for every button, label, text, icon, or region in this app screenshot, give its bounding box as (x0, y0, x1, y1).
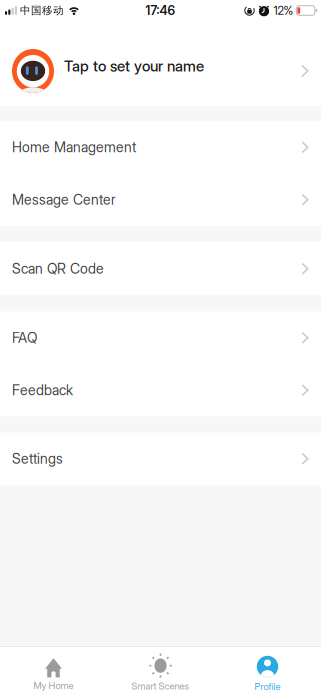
staticText: FAQ (12, 329, 37, 346)
staticText: Message Center (12, 191, 116, 208)
button[interactable]: Profile (214, 647, 321, 696)
staticText: Smart Scenes (131, 680, 189, 692)
button[interactable]: Tap to set your name (0, 21, 321, 106)
button[interactable]: Scan QR Code (0, 242, 321, 295)
staticText: My Home (33, 680, 73, 691)
staticText: 12% (273, 3, 293, 17)
button[interactable]: Settings (0, 432, 321, 485)
button[interactable]: Smart Scenes (107, 647, 214, 696)
button[interactable]: FAQ (0, 311, 321, 364)
button[interactable]: My Home (0, 647, 107, 696)
staticText: Profile (254, 681, 280, 692)
staticText: Home Management (12, 139, 136, 156)
staticText: 17:46 (145, 3, 175, 18)
staticText: Tap to set your name (64, 57, 204, 75)
staticText: Feedback (12, 382, 73, 399)
button[interactable]: Message Center (0, 173, 321, 226)
button[interactable]: Feedback (0, 364, 321, 416)
staticText: Scan QR Code (12, 260, 104, 277)
staticText: Settings (12, 450, 63, 467)
button[interactable]: Home Management (0, 121, 321, 173)
staticText: 中国移动 (20, 4, 64, 17)
